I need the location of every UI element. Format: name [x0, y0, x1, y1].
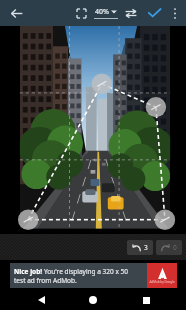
button[interactable]: Back — [29, 290, 53, 310]
staticText: AdMob by Google — [149, 280, 175, 284]
button[interactable]: Flip — [120, 2, 142, 24]
button[interactable]: Fit to screen — [70, 2, 92, 24]
staticText: 3 — [144, 243, 148, 252]
staticText: 40% — [95, 7, 109, 17]
staticText: You're displaying a 320 x 50 — [44, 267, 129, 276]
button[interactable]: More options — [166, 4, 184, 22]
staticText: Nice job! — [14, 267, 44, 276]
button[interactable]: 40% — [92, 7, 120, 19]
button[interactable]: Nice job! — [10, 263, 177, 288]
staticText: 0 — [173, 243, 177, 252]
button[interactable]: Apply — [142, 1, 166, 25]
button[interactable]: Recent apps — [134, 290, 158, 310]
button[interactable]: Redo — [156, 240, 182, 255]
staticText: test ad from AdMob. — [14, 276, 77, 285]
button[interactable]: Undo — [127, 240, 153, 255]
button[interactable]: Back — [6, 3, 26, 23]
button[interactable]: Home — [81, 290, 105, 310]
